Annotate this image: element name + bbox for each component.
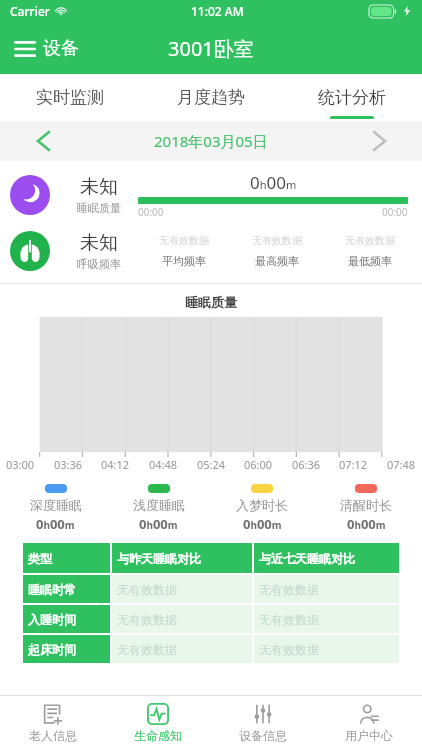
staticText: 无有效数据 bbox=[117, 582, 177, 597]
staticText: 04:48 bbox=[149, 457, 178, 472]
staticText: 类型 bbox=[28, 551, 52, 566]
button[interactable]: 设备 bbox=[0, 31, 89, 66]
staticText: 深度睡眠 bbox=[30, 497, 82, 513]
staticText: 与近七天睡眠对比 bbox=[259, 551, 355, 566]
staticText: 未知 bbox=[80, 231, 118, 255]
button[interactable]: 深度睡眠 bbox=[4, 484, 107, 533]
staticText: 0h00m bbox=[347, 515, 386, 533]
button[interactable]: 与近七天睡眠对比 bbox=[254, 543, 399, 573]
staticText: 11:02 AM bbox=[191, 3, 244, 19]
staticText: 清醒时长 bbox=[340, 497, 392, 513]
staticText: 用户中心 bbox=[345, 728, 393, 743]
staticText: 未知 bbox=[80, 175, 118, 199]
staticText: 无有效数据 bbox=[259, 612, 319, 627]
staticText: 最低频率 bbox=[348, 254, 392, 268]
staticText: 07:48 bbox=[387, 457, 416, 472]
staticText: 03:00 bbox=[6, 457, 35, 472]
staticText: 平均频率 bbox=[162, 254, 206, 268]
staticText: 无有效数据 bbox=[345, 234, 395, 247]
staticText: 睡眠质量 bbox=[185, 294, 237, 310]
staticText: 3001卧室 bbox=[168, 35, 254, 62]
button[interactable]: 统计分析 bbox=[281, 74, 422, 121]
staticText: 07:12 bbox=[339, 457, 368, 472]
staticText: 无有效数据 bbox=[159, 234, 209, 247]
staticText: 设备 bbox=[43, 37, 79, 60]
staticText: 03:36 bbox=[54, 457, 83, 472]
staticText: 入睡时间 bbox=[28, 612, 76, 627]
button[interactable]: 无有效数据 bbox=[254, 575, 399, 603]
button[interactable]: 生命感知 bbox=[105, 696, 210, 750]
button[interactable]: 用户中心 bbox=[316, 696, 422, 750]
button[interactable]: Next day bbox=[364, 126, 394, 156]
staticText: 睡眠时常 bbox=[28, 582, 76, 597]
button[interactable]: 实时监测 bbox=[0, 74, 140, 121]
staticText: 设备信息 bbox=[239, 728, 287, 743]
staticText: 0h00m bbox=[243, 515, 282, 533]
staticText: 无有效数据 bbox=[259, 582, 319, 597]
staticText: 浅度睡眠 bbox=[133, 497, 185, 513]
button[interactable]: 清醒时长 bbox=[314, 484, 418, 533]
button[interactable]: 无有效数据 bbox=[112, 635, 252, 663]
staticText: 与昨天睡眠对比 bbox=[117, 551, 201, 566]
staticText: 00:00 bbox=[382, 205, 408, 219]
button[interactable]: 无有效数据 bbox=[112, 605, 252, 633]
staticText: 起床时间 bbox=[28, 642, 76, 657]
button[interactable]: 月度趋势 bbox=[140, 74, 281, 121]
staticText: 0h00m bbox=[139, 515, 178, 533]
staticText: 睡眠质量 bbox=[77, 201, 121, 215]
staticText: 06:36 bbox=[292, 457, 321, 472]
staticText: 无有效数据 bbox=[259, 642, 319, 657]
button[interactable]: 无有效数据 bbox=[112, 575, 252, 603]
staticText: 00:00 bbox=[138, 205, 164, 219]
staticText: 04:12 bbox=[101, 457, 130, 472]
button[interactable]: 与昨天睡眠对比 bbox=[112, 543, 252, 573]
staticText: 无有效数据 bbox=[252, 234, 302, 247]
button[interactable]: 无有效数据 bbox=[254, 605, 399, 633]
staticText: 呼吸频率 bbox=[77, 257, 121, 271]
button[interactable]: 起床时间 bbox=[23, 635, 110, 663]
button[interactable]: 老人信息 bbox=[0, 696, 105, 750]
button[interactable]: 无有效数据 bbox=[254, 635, 399, 663]
button[interactable]: 类型 bbox=[23, 543, 110, 573]
button[interactable]: Previous day bbox=[28, 126, 58, 156]
staticText: 入梦时长 bbox=[236, 497, 288, 513]
staticText: 05:24 bbox=[197, 457, 226, 472]
staticText: 2018年03月05日 bbox=[154, 131, 268, 151]
button[interactable]: 浅度睡眠 bbox=[107, 484, 210, 533]
staticText: 统计分析 bbox=[318, 87, 386, 108]
staticText: 无有效数据 bbox=[117, 612, 177, 627]
staticText: 0h00m bbox=[250, 171, 297, 194]
button[interactable]: 睡眠时常 bbox=[23, 575, 110, 603]
button[interactable]: 入梦时长 bbox=[210, 484, 314, 533]
staticText: Carrier bbox=[10, 3, 50, 19]
staticText: 最高频率 bbox=[255, 254, 299, 268]
button[interactable]: 设备信息 bbox=[210, 696, 316, 750]
staticText: 06:00 bbox=[244, 457, 273, 472]
staticText: 老人信息 bbox=[29, 728, 77, 743]
staticText: 生命感知 bbox=[134, 728, 182, 743]
staticText: 0h00m bbox=[36, 515, 75, 533]
staticText: 实时监测 bbox=[36, 87, 104, 108]
button[interactable]: 入睡时间 bbox=[23, 605, 110, 633]
staticText: 月度趋势 bbox=[177, 87, 245, 108]
staticText: 无有效数据 bbox=[117, 642, 177, 657]
